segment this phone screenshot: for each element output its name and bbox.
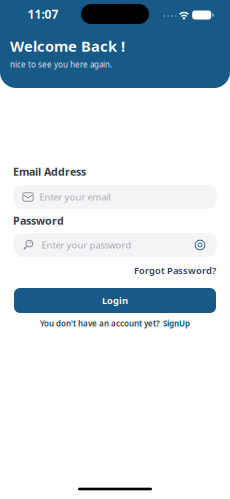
button[interactable]: SignUp [163,318,190,329]
staticText: Welcome Back ! [10,36,125,56]
staticText: Login [102,294,128,307]
staticText: Forgot Password? [134,264,216,277]
staticText: SignUp [163,318,190,329]
staticText: Email Address [13,164,86,179]
staticText: 11:07 [27,6,58,22]
button[interactable]: Login [14,288,216,313]
staticText: Password [13,213,64,228]
button[interactable]: Forgot Password? [134,264,216,277]
staticText: Enter your email [39,191,110,203]
staticText: Enter your password [41,239,131,251]
button[interactable]: Show password [194,239,205,250]
staticText: nice to see you here again. [10,59,112,70]
staticText: You don't have an account yet? [40,318,160,329]
